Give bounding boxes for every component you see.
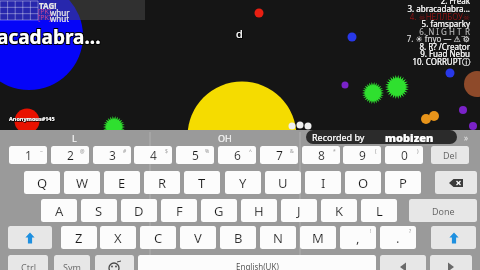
- staticText: whut: [50, 13, 70, 24]
- staticText: 0: [401, 147, 408, 163]
- button[interactable]: 1: [9, 146, 47, 164]
- staticText: ~: [40, 148, 43, 155]
- button[interactable]: Del: [431, 146, 469, 164]
- button[interactable]: S: [81, 199, 117, 222]
- button[interactable]: 8: [302, 146, 340, 164]
- staticText: ?: [409, 228, 412, 235]
- button[interactable]: B: [220, 226, 256, 249]
- button[interactable]: V: [180, 226, 216, 249]
- staticText: T: [198, 174, 206, 192]
- staticText: Sym: [63, 261, 81, 270]
- button[interactable]: N: [260, 226, 296, 249]
- button[interactable]: Q: [24, 171, 60, 194]
- staticText: 3. abracadabra...: [0, 3, 470, 14]
- staticText: E: [118, 174, 126, 192]
- staticText: OH: [218, 132, 232, 144]
- staticText: English(UK): [236, 261, 279, 270]
- button[interactable]: I: [305, 171, 341, 194]
- staticText: acadabra...: [0, 23, 100, 49]
- staticText: I: [321, 174, 326, 192]
- staticText: d: [236, 27, 243, 42]
- staticText: W: [76, 174, 89, 192]
- button[interactable]: Y: [225, 171, 261, 194]
- staticText: 2: [67, 147, 74, 163]
- button[interactable]: Move cursor left: [380, 255, 426, 270]
- button[interactable]: A: [41, 199, 77, 222]
- staticText: V: [194, 229, 202, 247]
- button[interactable]: 9: [343, 146, 381, 164]
- staticText: @: [80, 148, 85, 155]
- button[interactable]: ,: [340, 226, 376, 249]
- staticText: 6: [234, 147, 241, 163]
- button[interactable]: .: [380, 226, 416, 249]
- staticText: (: [375, 148, 377, 155]
- staticText: 4: [150, 147, 157, 163]
- button[interactable]: Z: [61, 226, 97, 249]
- staticText: 7. ☀ fnyo — ⚠ ⚙: [0, 33, 470, 44]
- staticText: 5. famsparky: [0, 18, 470, 29]
- staticText: d: [237, 26, 244, 41]
- button[interactable]: D: [121, 199, 157, 222]
- button[interactable]: G: [201, 199, 237, 222]
- button[interactable]: Move cursor right: [430, 255, 472, 270]
- button[interactable]: English(UK): [138, 255, 376, 270]
- button[interactable]: 7: [260, 146, 298, 164]
- button[interactable]: C: [140, 226, 176, 249]
- staticText: %: [205, 148, 210, 155]
- staticText: D: [134, 202, 144, 220]
- button[interactable]: 4: [134, 146, 172, 164]
- staticText: *: [333, 148, 336, 155]
- staticText: [PK]: [38, 13, 52, 23]
- button[interactable]: W: [64, 171, 100, 194]
- staticText: &: [290, 148, 294, 155]
- button[interactable]: P: [385, 171, 421, 194]
- button[interactable]: 5: [176, 146, 214, 164]
- staticText: Done: [432, 205, 455, 217]
- button[interactable]: K: [321, 199, 357, 222]
- staticText: N: [273, 229, 283, 247]
- button[interactable]: 2: [51, 146, 89, 164]
- button[interactable]: Shift: [431, 226, 476, 249]
- button[interactable]: J: [281, 199, 317, 222]
- button[interactable]: F: [161, 199, 197, 222]
- button[interactable]: M: [300, 226, 336, 249]
- button[interactable]: L: [361, 199, 397, 222]
- staticText: 10. CORRUPTⓘ: [0, 56, 470, 67]
- button[interactable]: Emoji: [95, 255, 134, 270]
- staticText: H: [254, 202, 264, 220]
- button[interactable]: E: [104, 171, 140, 194]
- button[interactable]: Ctrl: [8, 255, 48, 270]
- staticText: ^: [249, 148, 252, 155]
- staticText: .: [396, 229, 400, 247]
- staticText: 8: [318, 147, 325, 163]
- button[interactable]: Backspace: [435, 171, 477, 194]
- staticText: d: [236, 26, 243, 41]
- button[interactable]: 6: [218, 146, 256, 164]
- staticText: O: [358, 174, 369, 192]
- button[interactable]: 3: [93, 146, 131, 164]
- button[interactable]: 0: [385, 146, 423, 164]
- staticText: [PK]: [38, 7, 52, 17]
- button[interactable]: X: [100, 226, 136, 249]
- button[interactable]: U: [265, 171, 301, 194]
- staticText: X: [114, 229, 122, 247]
- button[interactable]: R: [144, 171, 180, 194]
- staticText: K: [335, 202, 344, 220]
- staticText: 2. Freak: [0, 0, 470, 6]
- staticText: M: [312, 229, 324, 247]
- staticText: d: [237, 27, 244, 42]
- staticText: J: [297, 202, 301, 220]
- button[interactable]: H: [241, 199, 277, 222]
- button[interactable]: Recorded by: [306, 130, 457, 144]
- staticText: 3: [109, 147, 116, 163]
- staticText: A: [55, 202, 64, 220]
- staticText: ,: [356, 229, 360, 247]
- button[interactable]: Shift: [8, 226, 52, 249]
- button[interactable]: Sym: [54, 255, 90, 270]
- staticText: Del: [443, 149, 457, 161]
- button[interactable]: T: [184, 171, 220, 194]
- button[interactable]: Done: [409, 199, 477, 222]
- staticText: Y: [239, 174, 247, 192]
- button[interactable]: O: [345, 171, 381, 194]
- staticText: Q: [37, 174, 48, 192]
